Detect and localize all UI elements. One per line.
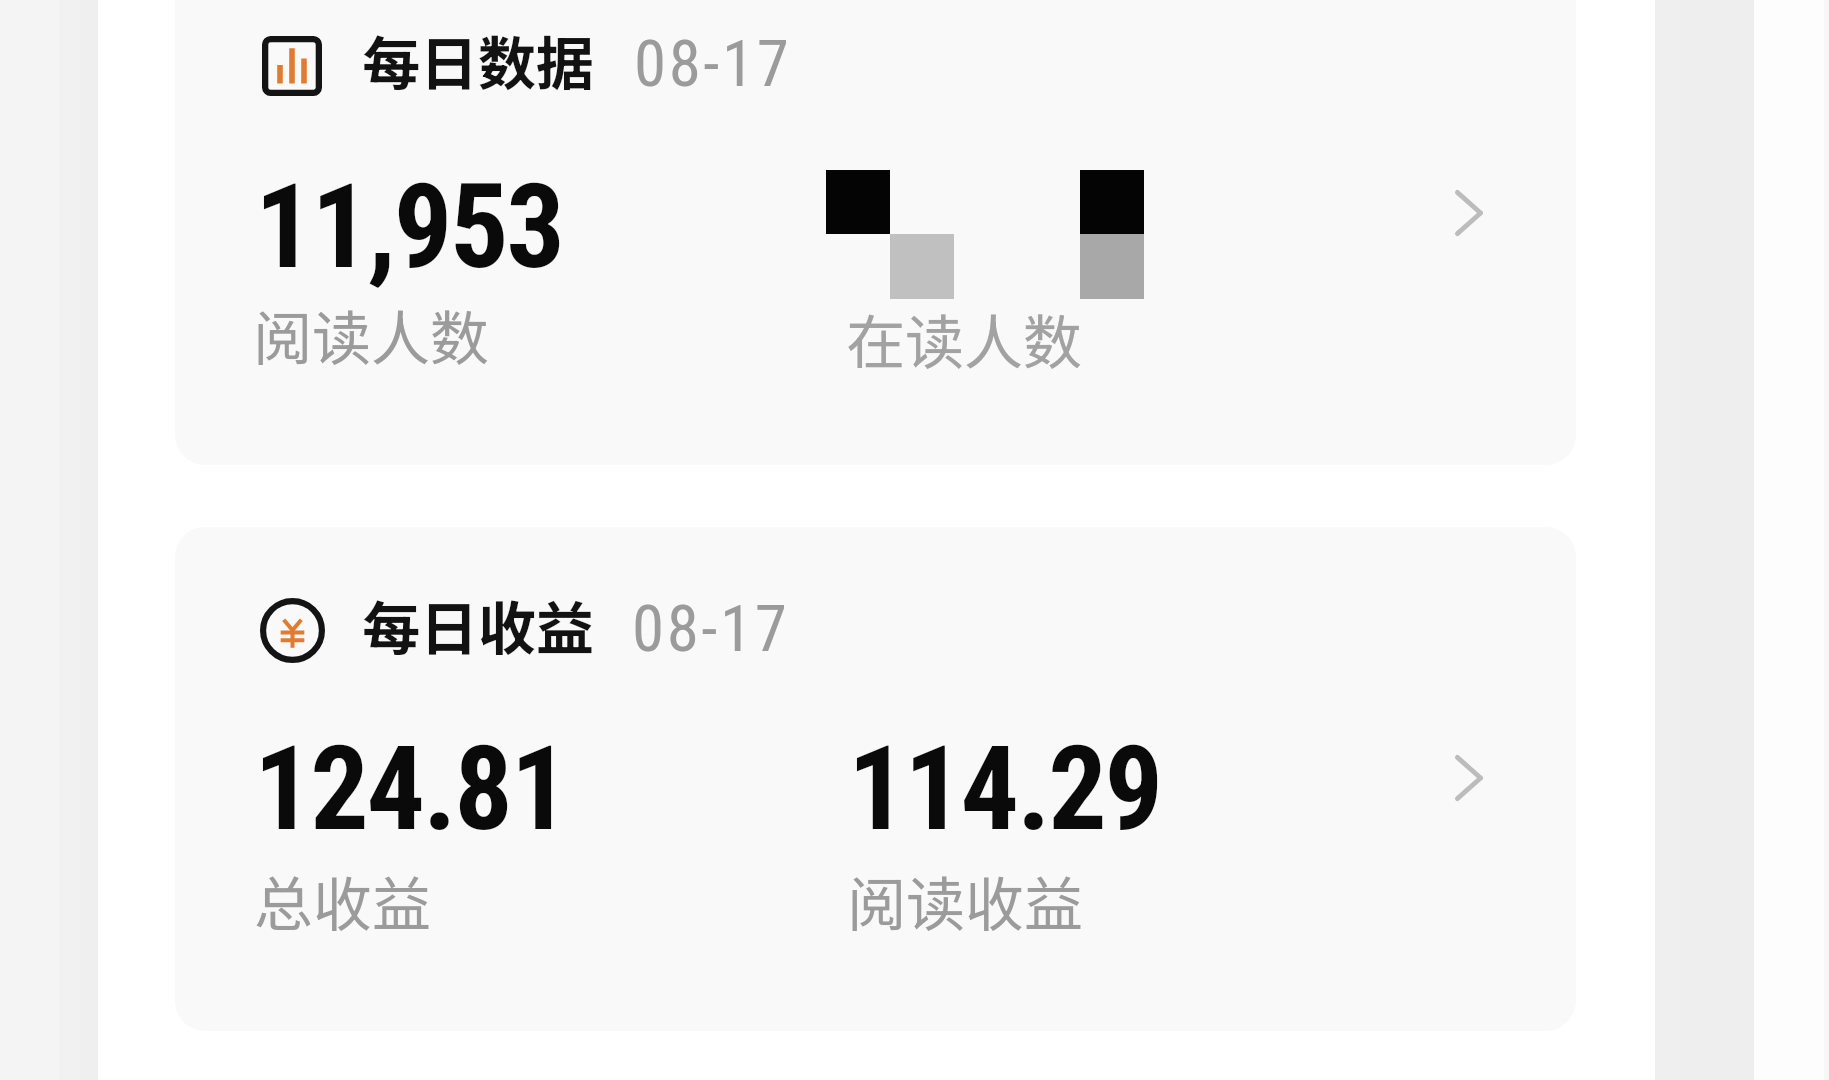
staticText: 阅读人数 [253, 292, 490, 377]
button[interactable]: Open daily income [1410, 702, 1530, 854]
staticText: 每日数据 [362, 18, 595, 102]
staticText: 阅读收益 [847, 858, 1084, 943]
button[interactable]: Open daily statistics [1410, 137, 1530, 289]
staticText: 每日收益 [362, 583, 595, 667]
other: Daily statistics [262, 36, 322, 96]
staticText: 在读人数 [846, 296, 1083, 381]
staticText: 114.29 [848, 721, 1161, 857]
staticText: 08-17 [634, 26, 792, 102]
staticText: 总收益 [254, 858, 432, 943]
other: Daily income [260, 598, 325, 663]
staticText: 11,953 [255, 159, 563, 295]
button[interactable]: Daily statistics [175, 0, 1576, 465]
button[interactable]: Daily income [175, 527, 1576, 1031]
staticText: 124.81 [254, 721, 567, 857]
staticText: 08-17 [632, 591, 790, 667]
